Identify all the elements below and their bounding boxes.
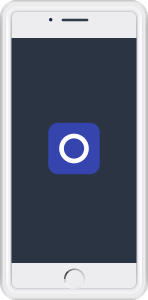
button[interactable]: Open app <box>48 123 100 174</box>
button[interactable]: Home <box>59 264 89 294</box>
